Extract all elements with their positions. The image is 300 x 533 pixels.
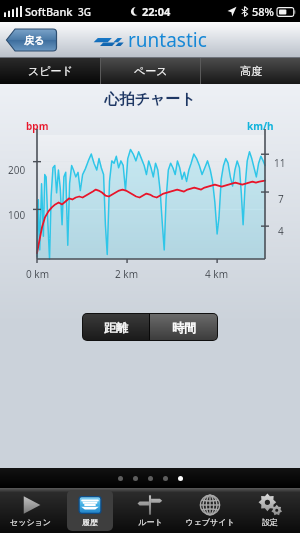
button[interactable]: 高度 [201, 58, 300, 84]
staticText: 履歴 [82, 517, 98, 527]
staticText: SoftBank [25, 4, 73, 19]
staticText: 戻る [24, 34, 45, 47]
button[interactable]: 戻る [5, 28, 57, 52]
staticText: runtastic [128, 27, 207, 53]
staticText: ルート [138, 517, 163, 527]
staticText: 距離 [104, 320, 128, 335]
button[interactable]: 履歴 [60, 488, 120, 533]
staticText: 22:04 [142, 4, 171, 19]
button[interactable]: ルート [120, 488, 180, 533]
staticText: 7 [278, 192, 284, 206]
staticText: 200 [8, 163, 26, 177]
staticText: 心拍チャート [0, 90, 300, 109]
staticText: 100 [8, 208, 26, 222]
button[interactable]: 時間 [150, 314, 217, 340]
staticText: 0 km [26, 267, 50, 281]
button[interactable]: 距離 [83, 314, 149, 340]
staticText: 11 [274, 156, 286, 170]
staticText: 4 km [205, 267, 229, 281]
staticText: 2 km [115, 267, 139, 281]
staticText: km/h [247, 119, 274, 133]
staticText: スピード [28, 64, 73, 78]
staticText: ウェブサイト [185, 517, 235, 527]
button[interactable]: 設定 [240, 488, 300, 533]
button[interactable]: セッション [0, 488, 60, 533]
staticText: bpm [26, 119, 49, 133]
button[interactable]: ウェブサイト [180, 488, 240, 533]
staticText: 4 [278, 224, 284, 238]
button[interactable]: スピード [0, 58, 100, 84]
staticText: セッション [10, 517, 51, 527]
button[interactable]: ペース [101, 58, 200, 84]
staticText: 時間 [172, 320, 196, 335]
staticText: 高度 [240, 64, 262, 78]
staticText: 58% [252, 4, 274, 19]
staticText: ペース [134, 64, 168, 78]
staticText: 設定 [262, 517, 278, 527]
staticText: 3G [78, 5, 91, 19]
